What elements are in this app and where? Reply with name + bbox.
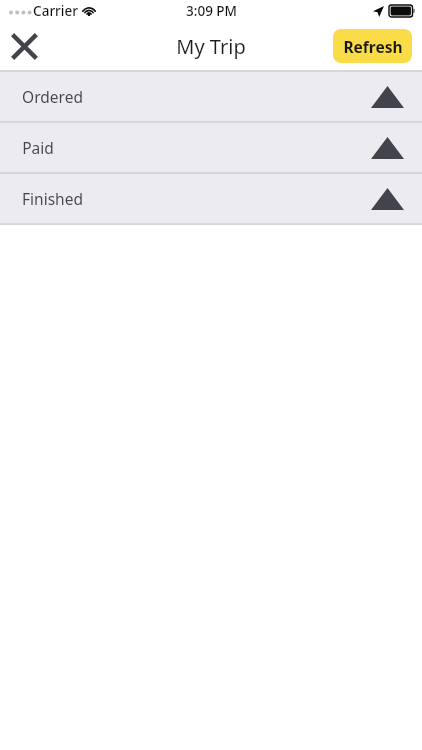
staticText: Finished (22, 188, 83, 209)
staticText: 3:09 PM (186, 2, 237, 20)
staticText: Refresh (343, 36, 403, 57)
button[interactable]: Finished (0, 174, 422, 223)
staticText: My Trip (176, 33, 246, 60)
staticText: Carrier (33, 2, 78, 20)
button[interactable]: Close (0, 22, 48, 70)
button[interactable]: Refresh (333, 29, 412, 63)
staticText: Ordered (22, 86, 83, 107)
button[interactable]: Paid (0, 123, 422, 172)
button[interactable]: Ordered (0, 72, 422, 121)
staticText: Paid (22, 137, 54, 158)
